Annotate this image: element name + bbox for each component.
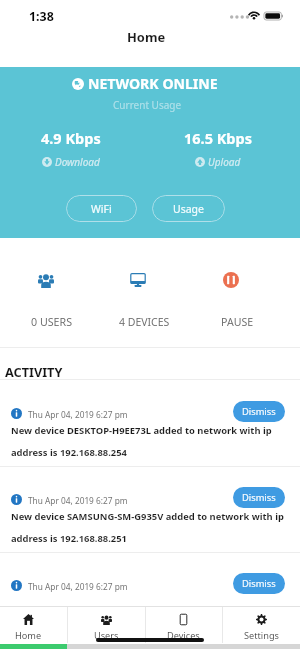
staticText: Thu Apr 04, 2019 6:27 pm (28, 581, 128, 592)
other: Pause (223, 272, 239, 288)
button[interactable]: Devices (145, 607, 222, 643)
staticText: New device DESKTOP-H9EE73L added to netw… (11, 424, 287, 459)
staticText: 4.9 Kbps (41, 128, 101, 148)
staticText: Home (15, 629, 42, 642)
staticText: New device SAMSUNG-SM-G935V added to net… (11, 510, 287, 545)
button[interactable]: Thu Apr 04, 2019 6:27 pm (0, 380, 300, 466)
staticText: 16.5 Kbps (184, 128, 252, 148)
staticText: Dismiss (242, 577, 276, 590)
button[interactable]: Users (0, 243, 92, 343)
button[interactable]: Users (68, 607, 145, 643)
staticText: Settings (244, 629, 279, 642)
staticText: WiFi (91, 202, 112, 216)
staticText: Dismiss (242, 405, 276, 418)
staticText: 4 DEVICES (119, 315, 170, 329)
staticText: NETWORK ONLINE (88, 74, 218, 93)
staticText: Devices (167, 629, 200, 642)
button[interactable]: Settings (223, 607, 300, 643)
button[interactable]: Home (0, 607, 67, 643)
other: Users (38, 272, 54, 288)
staticText: ACTIVITY (5, 363, 63, 380)
button[interactable]: Dismiss (233, 573, 285, 594)
button[interactable]: Pause (185, 243, 277, 343)
button[interactable]: Devices (92, 243, 184, 343)
staticText: PAUSE (221, 315, 254, 329)
button[interactable]: Usage (152, 195, 225, 222)
staticText: Upload (208, 155, 241, 169)
staticText: 1:38 (29, 8, 54, 25)
staticText: Usage (173, 202, 204, 216)
other: Devices (130, 272, 146, 288)
staticText: 0 USERS (31, 315, 73, 330)
staticText: Thu Apr 04, 2019 6:27 pm (28, 409, 128, 420)
button[interactable]: Thu Apr 04, 2019 6:27 pm (0, 552, 300, 595)
button[interactable]: Dismiss (233, 487, 285, 508)
staticText: Thu Apr 04, 2019 6:27 pm (28, 495, 128, 506)
button[interactable]: Dismiss (233, 401, 285, 422)
staticText: Download (55, 155, 100, 169)
staticText: Current Usage (113, 98, 182, 112)
staticText: Users (94, 629, 119, 642)
staticText: Dismiss (242, 491, 276, 504)
button[interactable]: WiFi (66, 195, 137, 222)
button[interactable]: Thu Apr 04, 2019 6:27 pm (0, 466, 300, 552)
staticText: Home (127, 28, 166, 46)
